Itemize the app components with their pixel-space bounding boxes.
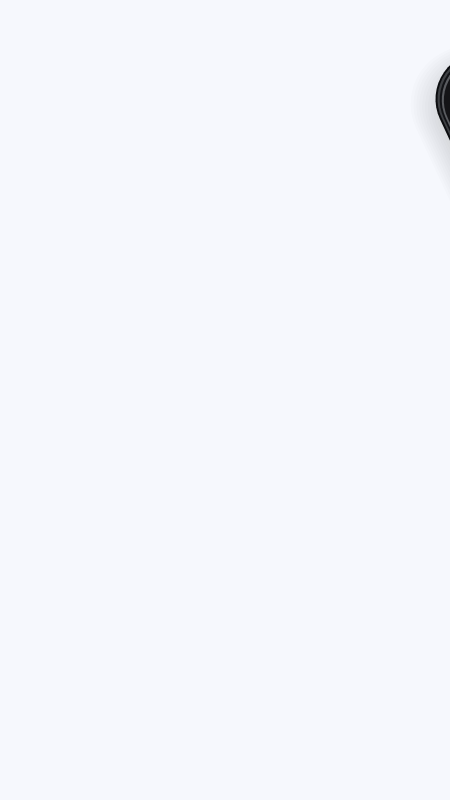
button[interactable]: Phone mockup of menu screen xyxy=(0,0,450,800)
